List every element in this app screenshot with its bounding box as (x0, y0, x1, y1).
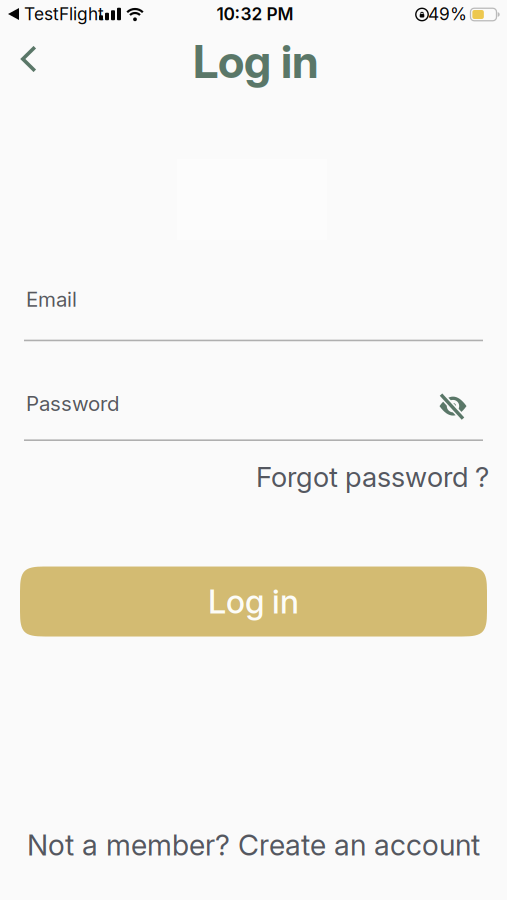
staticText: Password (26, 391, 120, 416)
button[interactable]: Password (24, 389, 483, 441)
staticText: 49% (428, 3, 467, 24)
staticText: Forgot password ? (256, 460, 489, 494)
button[interactable]: Not a member? Create an account (27, 828, 480, 862)
button[interactable]: Show password (438, 393, 468, 421)
button[interactable]: Back (7, 37, 51, 81)
staticText: Email (26, 287, 77, 312)
staticText: TestFlight (24, 3, 104, 24)
button[interactable]: Back to TestFlight (8, 3, 104, 25)
button[interactable]: Log in (20, 566, 487, 636)
staticText: 10:32 PM (216, 3, 293, 24)
staticText: Not a member? Create an account (27, 828, 480, 862)
staticText: Log in (193, 34, 319, 89)
button[interactable]: Forgot password ? (11, 460, 489, 494)
button[interactable]: Email (24, 287, 483, 341)
staticText: Log in (208, 582, 299, 621)
